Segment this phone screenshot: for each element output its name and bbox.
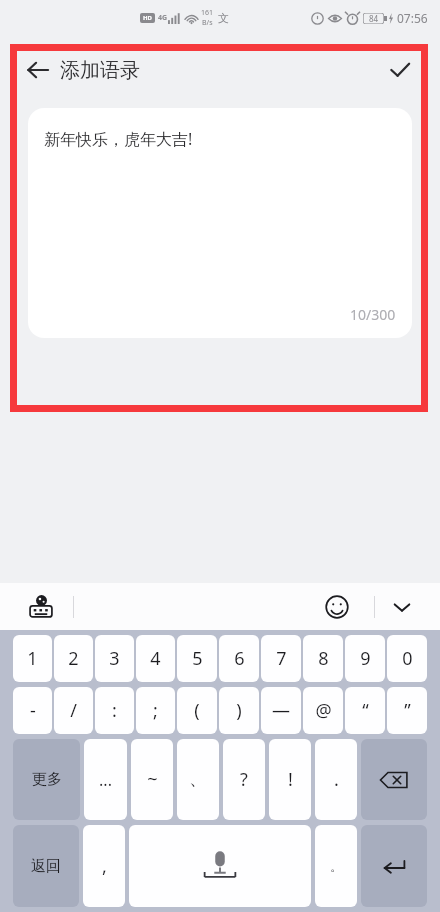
- staticText: 0: [402, 646, 413, 671]
- staticText: 2: [68, 646, 79, 671]
- staticText: ?: [240, 767, 248, 792]
- staticText: 4G: [158, 13, 168, 23]
- staticText: /: [70, 698, 77, 723]
- staticText: 6: [234, 646, 245, 671]
- staticText: 、: [189, 768, 207, 791]
- staticText: 4: [150, 646, 161, 671]
- staticText: 07:56: [397, 10, 428, 26]
- staticText: 新年快乐，虎年大吉!: [44, 128, 193, 150]
- button[interactable]: 3: [95, 635, 134, 682]
- staticText: 。: [330, 858, 343, 874]
- staticText: ,: [102, 854, 107, 879]
- button[interactable]: ...: [84, 739, 127, 820]
- button[interactable]: 0: [387, 635, 427, 682]
- button[interactable]: 7: [261, 635, 301, 682]
- button[interactable]: 新年快乐，虎年大吉!: [28, 108, 412, 338]
- staticText: 3: [109, 646, 120, 671]
- staticText: 161: [201, 8, 214, 18]
- staticText: @: [315, 698, 332, 723]
- button[interactable]: ,: [83, 825, 125, 907]
- button[interactable]: @: [303, 687, 343, 734]
- staticText: 5: [192, 646, 203, 671]
- staticText: ~: [147, 767, 158, 792]
- staticText: ;: [153, 698, 158, 723]
- staticText: :: [112, 698, 117, 723]
- button[interactable]: ~: [131, 739, 173, 820]
- staticText: —: [272, 698, 290, 723]
- button[interactable]: 5: [177, 635, 217, 682]
- button[interactable]: .: [315, 739, 357, 820]
- staticText: 8: [318, 646, 329, 671]
- staticText: 添加语录: [60, 58, 140, 83]
- button[interactable]: Emoji: [320, 590, 354, 624]
- button[interactable]: ): [219, 687, 259, 734]
- button[interactable]: Enter: [361, 825, 427, 907]
- staticText: 文: [218, 11, 229, 25]
- staticText: 返回: [31, 857, 61, 876]
- button[interactable]: 2: [54, 635, 93, 682]
- staticText: B/s: [202, 18, 213, 28]
- button[interactable]: /: [54, 687, 93, 734]
- button[interactable]: “: [345, 687, 385, 734]
- button[interactable]: !: [269, 739, 311, 820]
- button[interactable]: Backspace: [361, 739, 427, 820]
- button[interactable]: Hide keyboard: [384, 589, 420, 625]
- staticText: 9: [360, 646, 371, 671]
- staticText: 7: [276, 646, 287, 671]
- button[interactable]: 返回: [13, 825, 79, 907]
- button[interactable]: ”: [387, 687, 427, 734]
- staticText: .: [334, 767, 339, 792]
- staticText: ”: [404, 698, 411, 723]
- button[interactable]: ?: [223, 739, 265, 820]
- button[interactable]: 、: [177, 739, 219, 820]
- staticText: 84: [369, 13, 379, 24]
- button[interactable]: Switch input method: [24, 590, 58, 624]
- staticText: !: [288, 767, 293, 792]
- button[interactable]: Back: [18, 50, 58, 90]
- button[interactable]: -: [13, 687, 52, 734]
- button[interactable]: Space: [129, 825, 311, 907]
- button[interactable]: 4: [136, 635, 175, 682]
- button[interactable]: 。: [315, 825, 357, 907]
- button[interactable]: :: [95, 687, 134, 734]
- button[interactable]: 6: [219, 635, 259, 682]
- button[interactable]: 8: [303, 635, 343, 682]
- staticText: HD: [143, 14, 152, 22]
- button[interactable]: 9: [345, 635, 385, 682]
- staticText: -: [30, 698, 36, 723]
- staticText: 更多: [32, 770, 62, 789]
- button[interactable]: 1: [13, 635, 52, 682]
- staticText: 1: [27, 646, 38, 671]
- button[interactable]: 更多: [13, 739, 80, 820]
- button[interactable]: (: [177, 687, 217, 734]
- button[interactable]: —: [261, 687, 301, 734]
- button[interactable]: Save: [380, 50, 420, 90]
- staticText: ...: [99, 769, 112, 791]
- staticText: “: [362, 698, 369, 723]
- staticText: 10/300: [350, 305, 396, 324]
- button[interactable]: ;: [136, 687, 175, 734]
- staticText: (: [194, 698, 200, 723]
- staticText: ): [236, 698, 242, 723]
